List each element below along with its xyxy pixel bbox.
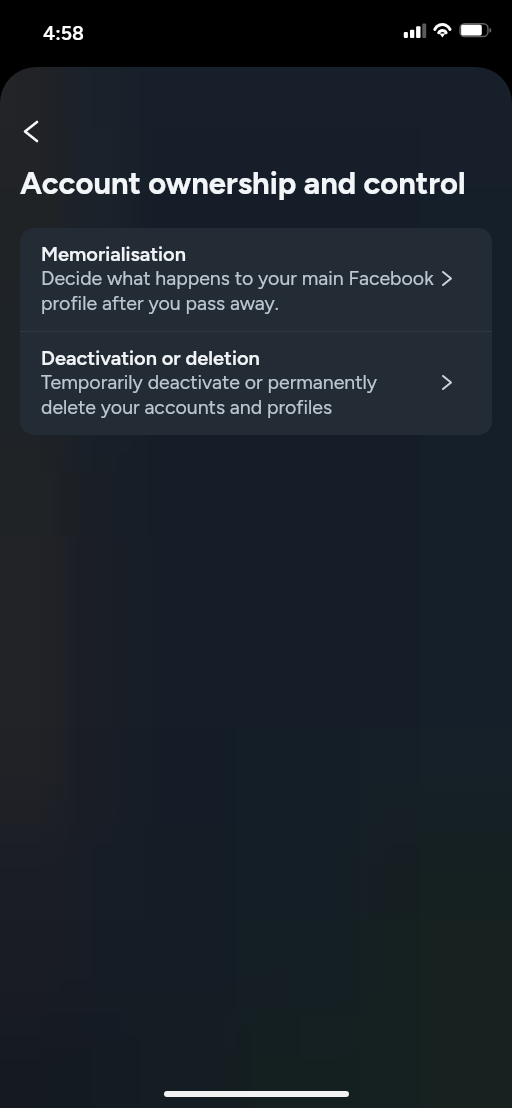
staticText: Memorialisation [41, 242, 186, 266]
staticText: 4:58 [43, 21, 84, 44]
staticText: Decide what happens to your main Faceboo… [41, 266, 434, 315]
button[interactable]: Deactivation or deletion [20, 332, 492, 435]
staticText: Account ownership and control [20, 165, 466, 202]
staticText: Deactivation or deletion [41, 346, 260, 370]
button[interactable]: Back [12, 112, 50, 150]
staticText: Temporarily deactivate or permanently de… [41, 370, 434, 419]
button[interactable]: Memorialisation [20, 228, 492, 331]
